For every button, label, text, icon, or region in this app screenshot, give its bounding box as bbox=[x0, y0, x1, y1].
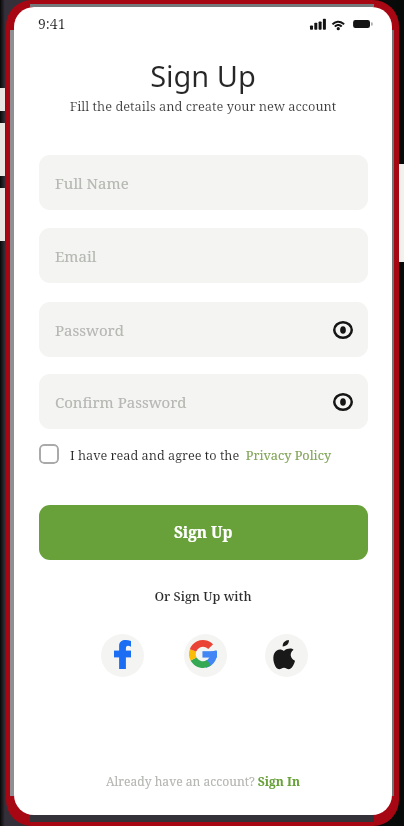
button[interactable]: Sign Up bbox=[39, 505, 368, 560]
staticText: Sign Up bbox=[14, 56, 392, 95]
button[interactable]: Sign up with Facebook bbox=[101, 634, 144, 677]
staticText: Or Sign Up with bbox=[14, 588, 392, 605]
button[interactable]: Email bbox=[39, 228, 368, 283]
staticText: Confirm Password bbox=[55, 392, 187, 412]
button[interactable]: Show password bbox=[330, 389, 356, 415]
staticText: Email bbox=[55, 246, 97, 266]
staticText: Already have an account? Sign In bbox=[106, 773, 300, 789]
button[interactable]: Confirm Password bbox=[39, 374, 368, 429]
button[interactable]: Already have an account? Sign In bbox=[106, 773, 300, 789]
button[interactable]: I have read and agree to the Privacy Pol… bbox=[39, 444, 332, 464]
button[interactable]: Show password bbox=[330, 317, 356, 343]
button[interactable]: Password bbox=[39, 302, 368, 357]
button[interactable]: Sign up with Apple bbox=[265, 634, 308, 677]
button[interactable]: Full Name bbox=[39, 155, 368, 210]
staticText: Fill the details and create your new acc… bbox=[14, 97, 392, 114]
staticText: Password bbox=[55, 320, 124, 340]
staticText: Full Name bbox=[55, 173, 129, 193]
staticText: 9:41 bbox=[38, 14, 66, 33]
button[interactable]: Sign up with Google bbox=[184, 634, 227, 677]
staticText: Sign Up bbox=[174, 522, 233, 543]
staticText: I have read and agree to the Privacy Pol… bbox=[70, 446, 332, 463]
